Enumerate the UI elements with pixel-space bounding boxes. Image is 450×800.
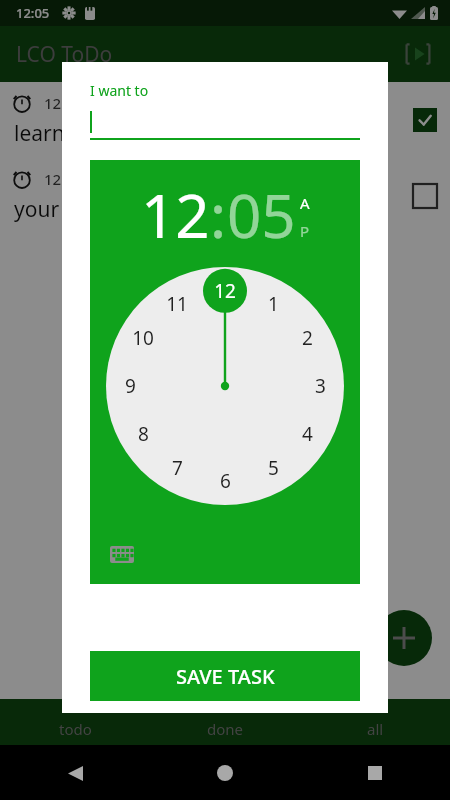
staticText: 3: [315, 373, 326, 399]
button[interactable]: 1: [257, 290, 289, 318]
staticText: 12:05 PM: [44, 169, 110, 189]
staticText: todo: [59, 719, 92, 739]
staticText: 12: [214, 278, 236, 304]
staticText: 9: [125, 373, 136, 399]
staticText: 7: [172, 455, 183, 481]
staticText: 2: [302, 325, 313, 351]
button[interactable]: 9: [114, 372, 146, 400]
button[interactable]: Mark done: [412, 183, 438, 209]
button[interactable]: 12: [141, 174, 210, 256]
button[interactable]: P: [300, 221, 310, 241]
button[interactable]: done: [150, 699, 300, 745]
staticText: 4: [302, 421, 313, 447]
button[interactable]: SAVE TASK: [90, 651, 360, 701]
button[interactable]: all: [300, 699, 450, 745]
staticText: LCO ToDo: [16, 40, 113, 69]
button[interactable]: 12:05 PM: [0, 158, 450, 234]
button[interactable]: 4: [291, 420, 323, 448]
button[interactable]: Home: [205, 753, 245, 793]
button[interactable]: 05: [227, 174, 296, 256]
button[interactable]: Switch to keyboard input: [104, 536, 140, 572]
button[interactable]: 12:05 PM: [0, 82, 450, 158]
button[interactable]: 8: [127, 420, 159, 448]
staticText: P: [300, 221, 310, 241]
staticText: 8: [138, 421, 149, 447]
button[interactable]: Add task: [376, 610, 432, 666]
button[interactable]: 5: [257, 454, 289, 482]
button[interactable]: [90, 108, 360, 140]
button[interactable]: 7: [161, 454, 193, 482]
staticText: I want to: [90, 81, 149, 100]
button[interactable]: 2: [291, 324, 323, 352]
button[interactable]: 11: [161, 290, 193, 318]
staticText: SAVE TASK: [176, 663, 275, 690]
button[interactable]: Mark not done: [412, 107, 438, 133]
button[interactable]: 12: [209, 277, 241, 305]
staticText: 10: [132, 325, 154, 351]
staticText: 11: [166, 291, 188, 317]
button[interactable]: 3: [304, 372, 336, 400]
staticText: your task: [14, 195, 106, 224]
staticText: A: [300, 193, 310, 213]
button[interactable]: Back: [55, 753, 95, 793]
staticText: done: [207, 719, 244, 739]
button[interactable]: todo: [0, 699, 150, 745]
button[interactable]: A: [300, 193, 310, 213]
staticText: 6: [220, 468, 231, 494]
button[interactable]: 6: [209, 467, 241, 495]
staticText: 12:05 PM: [44, 93, 110, 113]
staticText: 1: [268, 291, 279, 317]
staticText: 12:05: [16, 4, 50, 22]
button[interactable]: 10: [127, 324, 159, 352]
button[interactable]: Logo: [398, 34, 438, 74]
staticText: learn android: [14, 119, 148, 148]
staticText: :: [210, 174, 227, 256]
staticText: all: [367, 719, 384, 739]
staticText: 5: [268, 455, 279, 481]
button[interactable]: Recents: [355, 753, 395, 793]
